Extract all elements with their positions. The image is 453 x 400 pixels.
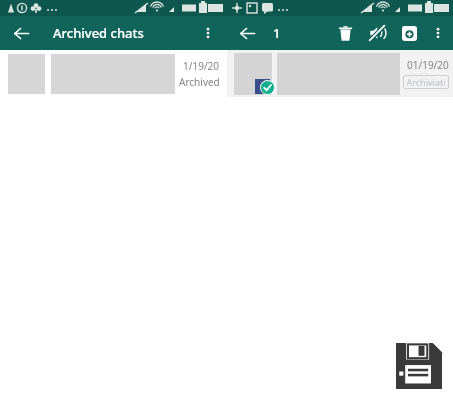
button[interactable]: Back [232,18,262,48]
staticText: Archived chats [53,24,144,42]
button[interactable]: Delete [331,19,359,47]
button[interactable]: More options [193,18,223,48]
button[interactable]: More options [425,20,451,46]
staticText: 1 [273,24,281,42]
button[interactable]: 01/19/20 [227,50,453,97]
button[interactable]: Save [393,340,445,392]
button[interactable]: Unarchive [395,19,423,47]
staticText: Archiviati [406,76,446,88]
button[interactable]: 1/19/20 [0,50,227,97]
staticText: Archived [179,75,220,89]
button[interactable]: Mute [363,19,391,47]
staticText: 1/19/20 [183,59,220,73]
staticText: 01/19/20 [407,58,449,72]
button[interactable]: Back [6,18,36,48]
